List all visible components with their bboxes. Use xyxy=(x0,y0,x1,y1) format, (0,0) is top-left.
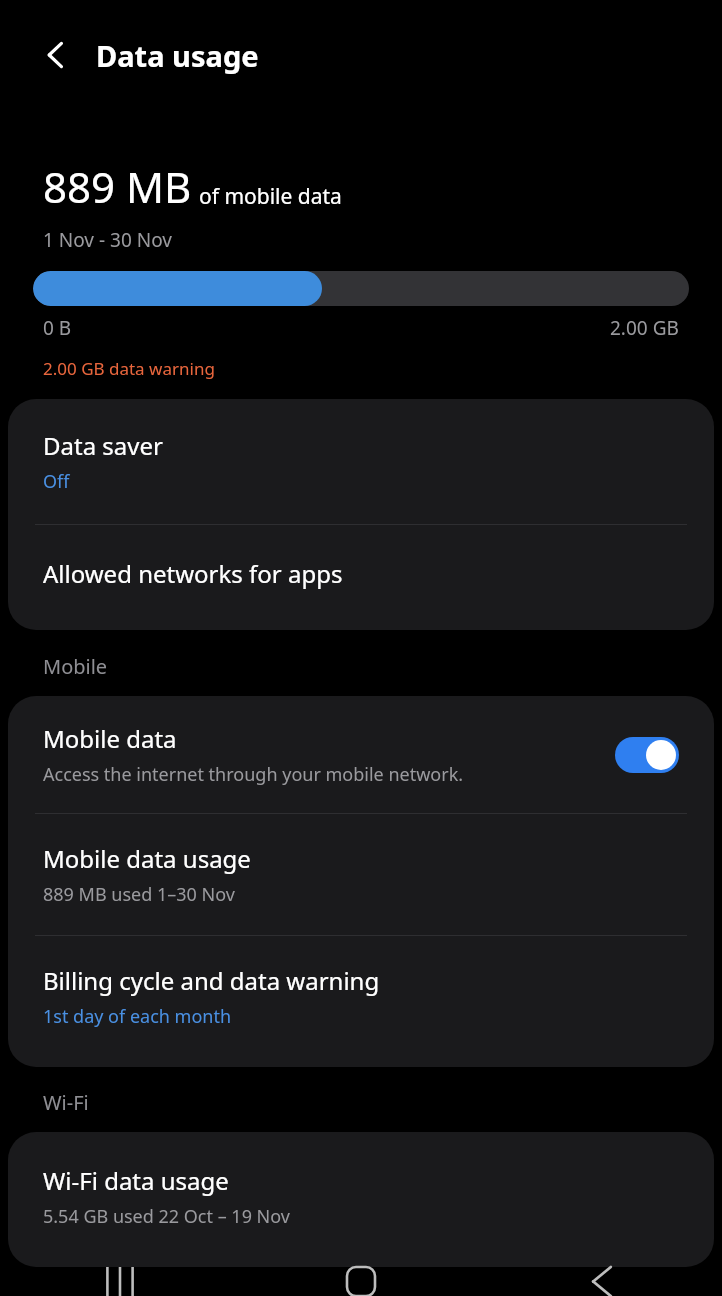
staticText: of mobile data xyxy=(199,182,342,211)
staticText: Wi-Fi xyxy=(43,1089,89,1116)
staticText: Wi-Fi data usage xyxy=(43,1164,229,1197)
staticText: 5.54 GB used 22 Oct – 19 Nov xyxy=(43,1204,290,1229)
button[interactable]: Wi-Fi data usage xyxy=(8,1132,714,1267)
button[interactable]: Recent apps xyxy=(0,1267,240,1296)
staticText: Access the internet through your mobile … xyxy=(43,762,464,787)
staticText: 0 B xyxy=(43,315,72,341)
staticText: Data usage xyxy=(96,36,259,75)
button[interactable]: Billing cycle and data warning xyxy=(8,936,714,1067)
button[interactable]: Mobile data toggle xyxy=(615,737,679,773)
staticText: Data saver xyxy=(43,429,163,462)
staticText: Mobile data xyxy=(43,722,177,755)
button[interactable]: Back xyxy=(481,1267,722,1296)
staticText: 2.00 GB data warning xyxy=(43,357,215,380)
staticText: Billing cycle and data warning xyxy=(43,964,380,997)
staticText: 1 Nov - 30 Nov xyxy=(43,227,172,253)
staticText: 889 MB used 1–30 Nov xyxy=(43,882,235,907)
staticText: Off xyxy=(43,469,70,494)
staticText: 889 MB xyxy=(43,158,192,215)
staticText: Allowed networks for apps xyxy=(43,557,343,590)
staticText: 1st day of each month xyxy=(43,1004,232,1029)
button[interactable]: Mobile data usage xyxy=(8,814,714,935)
button[interactable]: Home xyxy=(240,1267,481,1296)
button[interactable]: Allowed networks for apps xyxy=(8,525,714,630)
staticText: 2.00 GB xyxy=(610,315,679,341)
staticText: Mobile data usage xyxy=(43,842,251,875)
staticText: Mobile xyxy=(43,653,108,680)
button[interactable]: Data saver xyxy=(8,399,714,524)
button[interactable]: Back xyxy=(28,27,84,83)
button[interactable]: Mobile data xyxy=(8,696,714,813)
